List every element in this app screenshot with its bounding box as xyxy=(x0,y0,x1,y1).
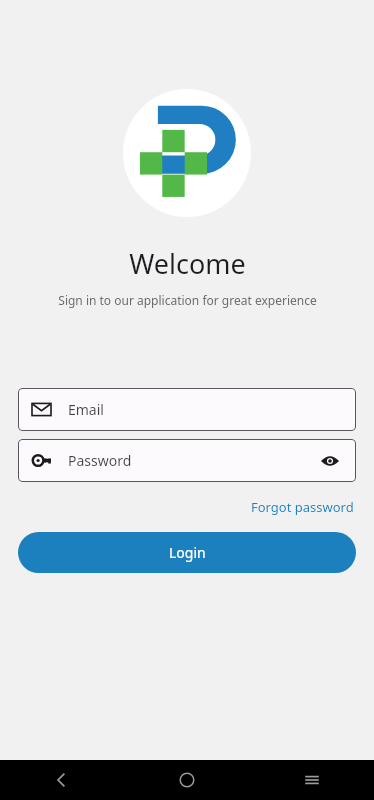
staticText: Forgot password xyxy=(251,498,354,516)
button[interactable]: Back xyxy=(0,760,124,800)
staticText: Password xyxy=(68,451,132,470)
staticText: Email xyxy=(68,400,104,419)
button[interactable]: Password xyxy=(18,439,356,482)
button[interactable]: Show password xyxy=(318,449,342,473)
staticText: Welcome xyxy=(129,245,246,282)
button[interactable]: Login xyxy=(18,532,356,573)
button[interactable]: Recent apps xyxy=(249,760,374,800)
staticText: Login xyxy=(169,543,206,562)
button[interactable]: Home xyxy=(124,760,249,800)
button[interactable]: Email xyxy=(18,388,356,431)
staticText: Sign in to our application for great exp… xyxy=(58,292,317,308)
button[interactable]: Forgot password xyxy=(249,496,356,518)
